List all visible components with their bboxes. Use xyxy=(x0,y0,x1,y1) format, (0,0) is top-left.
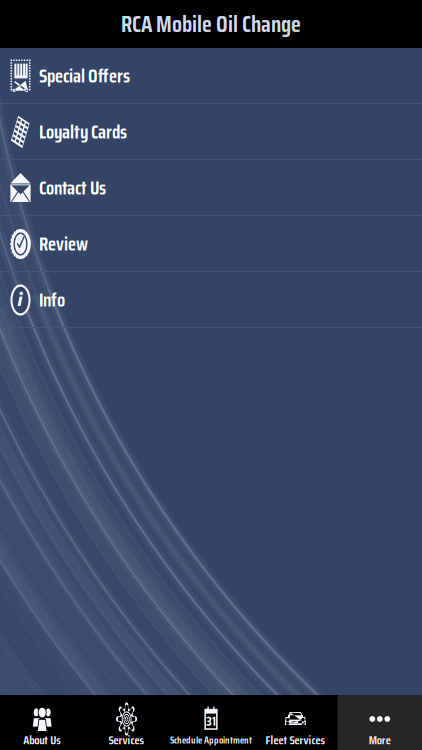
staticText: About Us xyxy=(23,731,61,749)
button[interactable]: Contact Us xyxy=(0,160,422,216)
button[interactable]: Services xyxy=(84,695,169,750)
staticText: More xyxy=(369,731,391,749)
staticText: Services xyxy=(109,731,145,749)
button[interactable]: 31 xyxy=(169,695,253,750)
button[interactable]: Info xyxy=(0,272,422,328)
button[interactable]: Fleet Services xyxy=(253,695,338,750)
button[interactable]: About Us xyxy=(0,695,84,750)
staticText: 31 xyxy=(206,710,216,731)
button[interactable]: Special Offers xyxy=(0,48,422,104)
staticText: Contact Us xyxy=(39,173,106,203)
staticText: Loyalty Cards xyxy=(39,117,127,147)
staticText: RCA Mobile Oil Change xyxy=(121,6,301,42)
button[interactable]: Review xyxy=(0,216,422,272)
staticText: Schedule Appointment xyxy=(170,732,252,748)
staticText: Special Offers xyxy=(39,61,130,91)
staticText: Info xyxy=(39,285,65,315)
staticText: Fleet Services xyxy=(265,731,325,749)
button[interactable]: Loyalty Cards xyxy=(0,104,422,160)
staticText: Review xyxy=(39,229,88,259)
button[interactable]: More xyxy=(338,695,422,750)
